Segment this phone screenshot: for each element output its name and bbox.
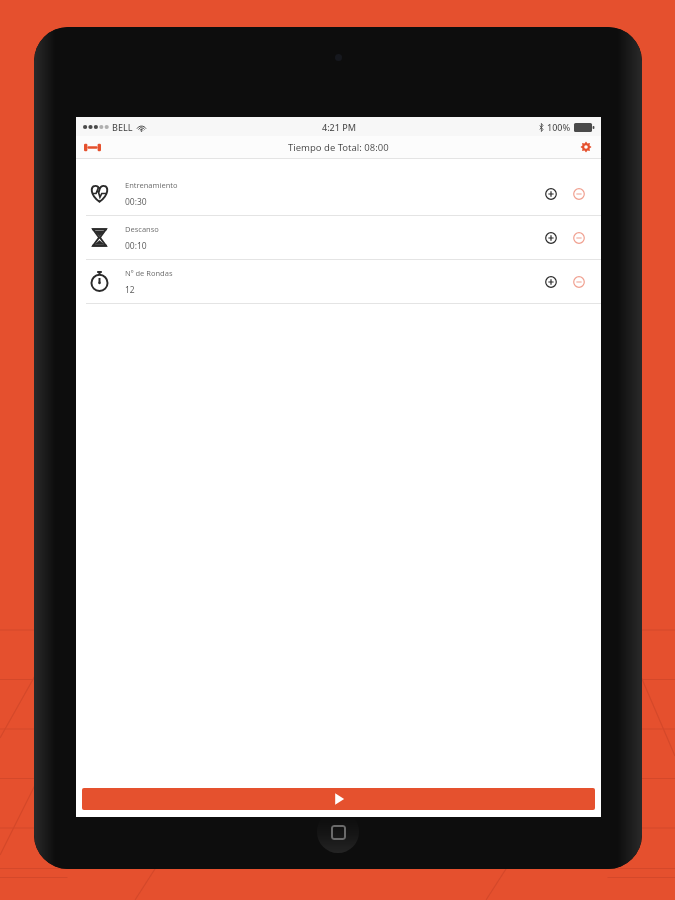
button[interactable]: Decrease Descanso: [567, 226, 591, 250]
staticText: Entrenamiento: [125, 180, 178, 190]
staticText: 12: [125, 284, 135, 296]
button[interactable]: Increase Descanso: [539, 226, 563, 250]
button[interactable]: Descanso: [76, 216, 601, 259]
button[interactable]: Decrease Nº de Rondas: [567, 270, 591, 294]
button[interactable]: Increase Entrenamiento: [539, 182, 563, 206]
staticText: Descanso: [125, 224, 159, 234]
staticText: Nº de Rondas: [125, 268, 173, 278]
staticText: 00:30: [125, 196, 147, 208]
button[interactable]: Decrease Entrenamiento: [567, 182, 591, 206]
button[interactable]: Settings: [576, 137, 596, 157]
button[interactable]: Entrenamiento: [76, 172, 601, 215]
staticText: 4:21 PM: [322, 121, 356, 133]
button[interactable]: Start: [82, 788, 595, 810]
button[interactable]: Workouts: [81, 137, 103, 157]
button[interactable]: Nº de Rondas: [76, 260, 601, 303]
staticText: 00:10: [125, 240, 147, 252]
staticText: Tiempo de Total: 08:00: [288, 141, 389, 154]
staticText: BELL: [112, 121, 133, 133]
button[interactable]: Increase Nº de Rondas: [539, 270, 563, 294]
button[interactable]: Home: [317, 811, 359, 853]
staticText: 100%: [547, 121, 571, 133]
